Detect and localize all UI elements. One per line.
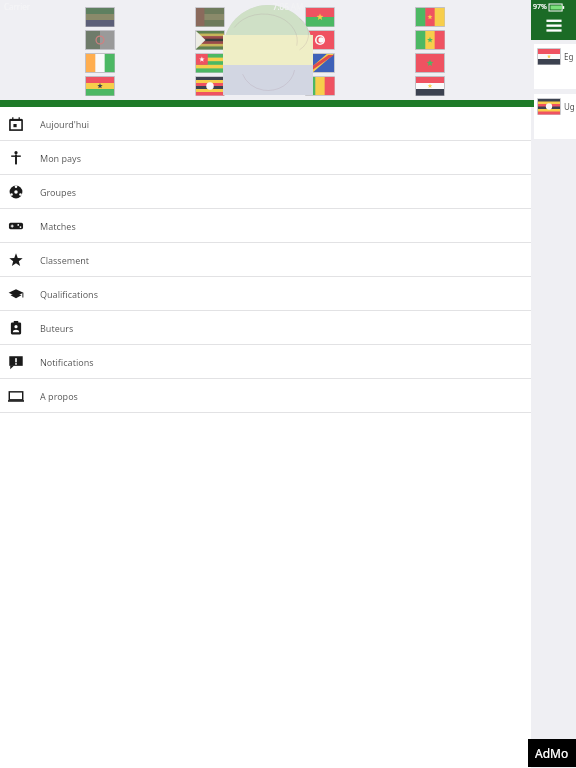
staticText: 97%	[533, 2, 547, 12]
staticText: AdMo	[535, 745, 569, 761]
staticText: 7:06 AM	[0, 1, 576, 12]
button[interactable]: Open navigation menu	[531, 0, 576, 40]
staticText: Groupes	[40, 186, 77, 198]
button[interactable]: AdMo	[528, 739, 576, 767]
button[interactable]: Matches	[0, 209, 531, 243]
button[interactable]: Mon pays	[0, 141, 531, 175]
button[interactable]: Ugan	[534, 94, 576, 139]
staticText: Classement	[40, 254, 90, 266]
button[interactable]: Qualifications	[0, 277, 531, 311]
staticText: Ugan	[564, 101, 576, 112]
staticText: Buteurs	[40, 322, 74, 334]
button[interactable]: Classement	[0, 243, 531, 277]
staticText: Notifications	[40, 356, 94, 368]
staticText: Aujourd'hui	[40, 118, 90, 130]
staticText: Matches	[40, 220, 76, 232]
button[interactable]: Egyp	[534, 44, 576, 89]
button[interactable]: Aujourd'hui	[0, 107, 531, 141]
staticText: Qualifications	[40, 288, 98, 300]
staticText: Egyp	[564, 51, 576, 62]
staticText: A propos	[40, 390, 78, 402]
button[interactable]: Notifications	[0, 345, 531, 379]
button[interactable]: A propos	[0, 379, 531, 413]
button[interactable]: Groupes	[0, 175, 531, 209]
staticText: Mon pays	[40, 152, 81, 164]
button[interactable]: Buteurs	[0, 311, 531, 345]
